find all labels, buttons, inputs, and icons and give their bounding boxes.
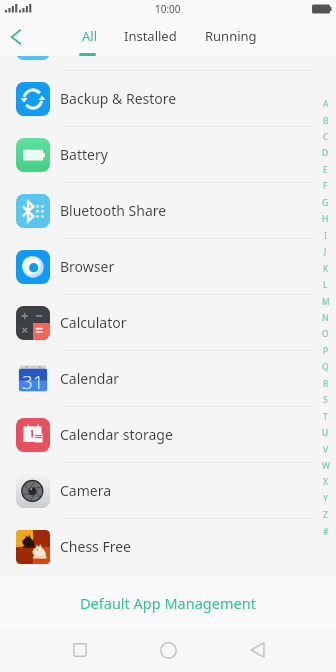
staticText: D bbox=[322, 147, 329, 159]
button[interactable]: Calendar storage bbox=[0, 406, 336, 462]
button[interactable]: Installed bbox=[124, 18, 177, 56]
button[interactable]: Home bbox=[140, 628, 196, 672]
staticText: F bbox=[323, 180, 328, 192]
staticText: Calendar bbox=[60, 369, 120, 388]
button[interactable]: Chess Free bbox=[0, 518, 336, 574]
staticText: Y bbox=[323, 493, 328, 505]
staticText: # bbox=[323, 526, 329, 538]
button[interactable]: Audio bbox=[0, 56, 336, 70]
staticText: N bbox=[322, 312, 329, 324]
button[interactable]: Browser bbox=[0, 238, 336, 294]
button[interactable]: Back bbox=[230, 628, 286, 672]
staticText: L bbox=[323, 279, 328, 291]
staticText: Bluetooth Share bbox=[60, 201, 167, 220]
button[interactable]: Back bbox=[0, 20, 34, 54]
button[interactable]: Bluetooth Share bbox=[0, 182, 336, 238]
staticText: M bbox=[322, 296, 330, 308]
staticText: Running bbox=[205, 27, 257, 45]
button[interactable]: Battery bbox=[0, 126, 336, 182]
staticText: W bbox=[322, 460, 330, 472]
staticText: B bbox=[323, 115, 329, 127]
staticText: Backup & Restore bbox=[60, 89, 177, 108]
staticText: A bbox=[323, 98, 329, 110]
staticText: Q bbox=[322, 361, 329, 373]
staticText: Camera bbox=[60, 481, 112, 500]
staticText: Z bbox=[323, 509, 328, 521]
staticText: J bbox=[324, 246, 327, 258]
staticText: 31 bbox=[22, 369, 44, 395]
staticText: All bbox=[82, 27, 98, 45]
staticText: Installed bbox=[124, 27, 177, 45]
staticText: O bbox=[322, 328, 329, 340]
staticText: G bbox=[322, 197, 329, 209]
button[interactable]: 31 bbox=[0, 350, 336, 406]
staticText: P bbox=[323, 345, 329, 357]
staticText: X bbox=[323, 476, 328, 488]
staticText: C bbox=[323, 131, 329, 143]
staticText: S bbox=[323, 394, 328, 406]
staticText: U bbox=[322, 427, 329, 439]
button[interactable]: Camera bbox=[0, 462, 336, 518]
staticText: K bbox=[323, 263, 329, 275]
staticText: Browser bbox=[60, 257, 115, 276]
staticText: Default App Management bbox=[80, 593, 256, 613]
staticText: Chess Free bbox=[60, 537, 132, 556]
staticText: Calculator bbox=[60, 313, 127, 332]
staticText: E bbox=[323, 164, 328, 176]
staticText: Calendar storage bbox=[60, 425, 173, 444]
staticText: Battery bbox=[60, 145, 108, 164]
staticText: V bbox=[323, 444, 329, 456]
button[interactable]: All bbox=[81, 18, 98, 56]
staticText: I bbox=[324, 230, 327, 242]
button[interactable]: Recents bbox=[52, 628, 108, 672]
button[interactable]: Running bbox=[205, 18, 257, 56]
staticText: H bbox=[322, 213, 329, 225]
staticText: R bbox=[323, 378, 329, 390]
staticText: T bbox=[323, 411, 328, 423]
staticText: 10:00 bbox=[155, 2, 181, 16]
button[interactable]: Backup & Restore bbox=[0, 70, 336, 126]
button[interactable]: Default App Management bbox=[0, 576, 336, 628]
button[interactable]: Calculator bbox=[0, 294, 336, 350]
